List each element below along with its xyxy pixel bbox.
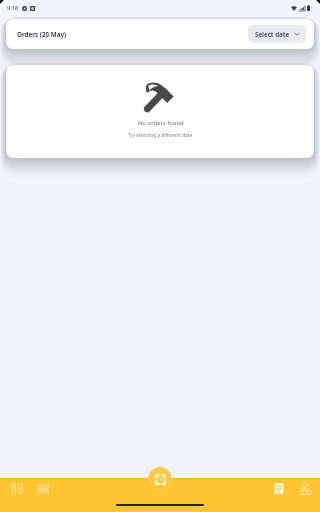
staticText: Try selecting a different date [128,132,193,139]
button[interactable]: Select date [248,25,306,43]
button[interactable]: Stations [32,478,54,500]
button[interactable]: Scan [148,467,172,491]
staticText: 9:18 [7,4,19,12]
staticText: No orders found [138,119,184,127]
staticText: Select date [255,30,290,38]
button[interactable]: Network [294,478,316,500]
staticText: Orders (20 May) [17,30,67,39]
button[interactable]: Orders [268,478,290,500]
button[interactable]: Dashboard [6,478,28,500]
